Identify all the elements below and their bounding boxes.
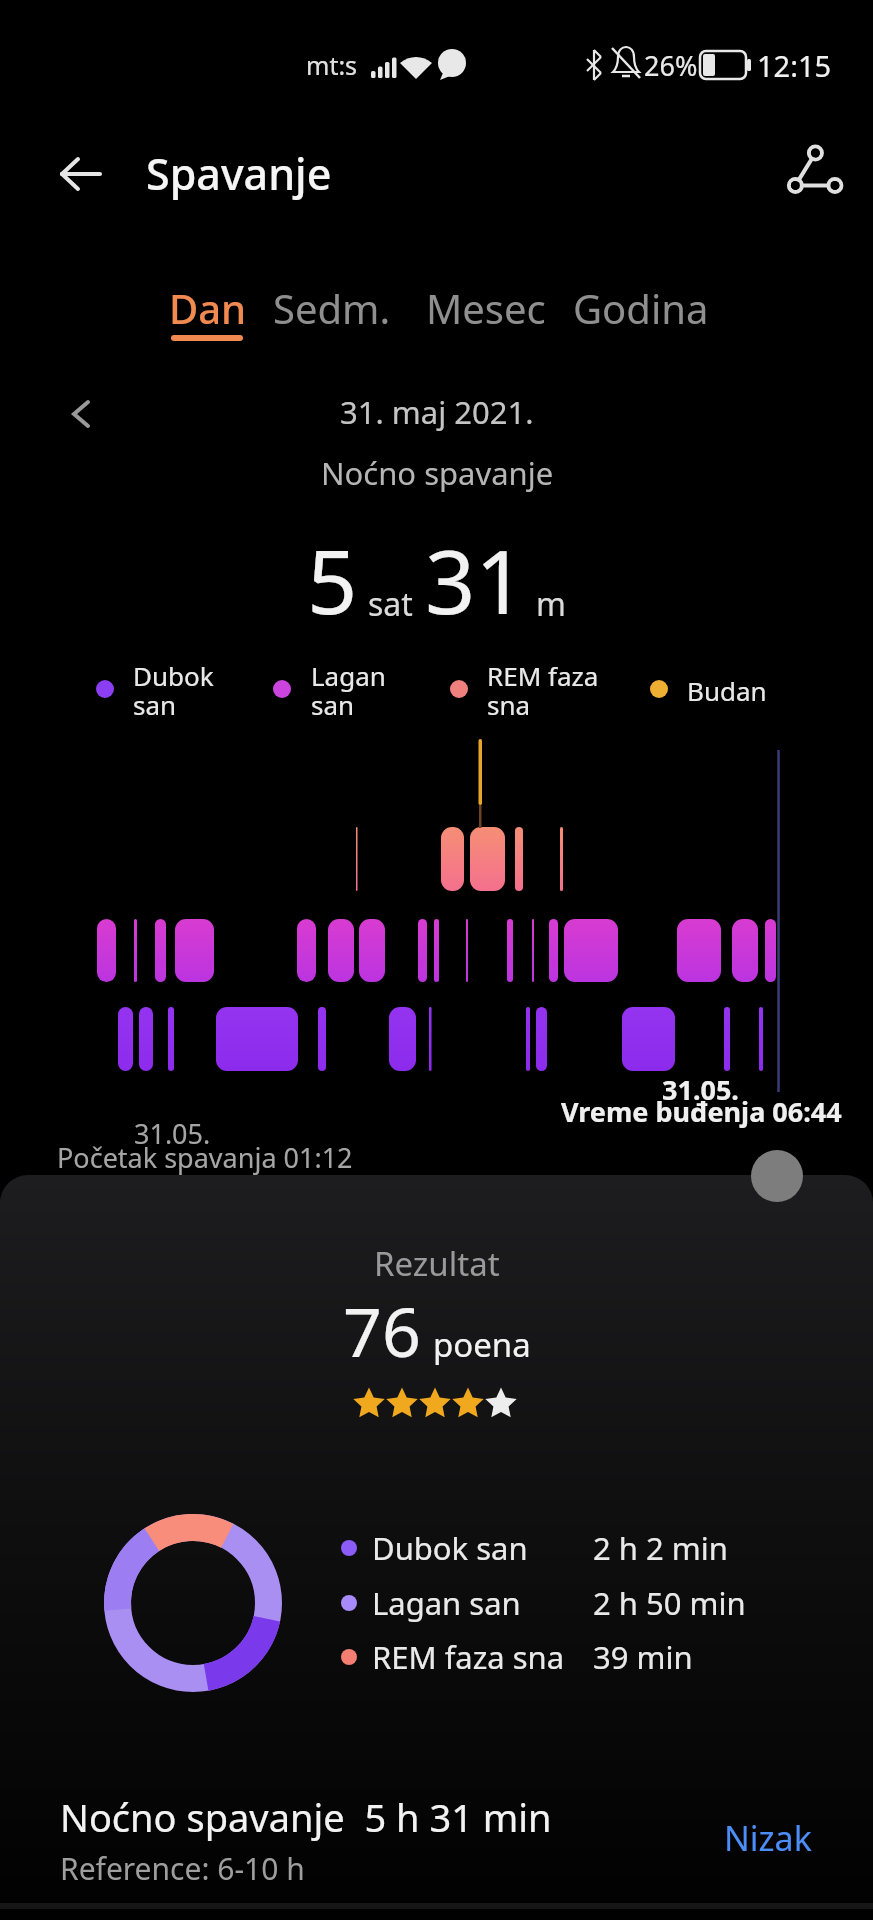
button[interactable]: Godina <box>566 275 716 341</box>
staticText: REM faza sna <box>372 1636 565 1678</box>
staticText: 5 <box>307 520 358 640</box>
button[interactable] <box>48 148 112 200</box>
staticText: 31. maj 2021. <box>340 391 534 433</box>
staticText: Dubok san <box>133 658 214 722</box>
staticText: Rezultat <box>374 1241 500 1286</box>
staticText: Noćno spavanje <box>321 452 554 494</box>
staticText: poena <box>433 1322 531 1367</box>
staticText: 39 min <box>593 1636 693 1678</box>
staticText: m <box>536 582 566 626</box>
staticText: 2 h 2 min <box>593 1527 728 1569</box>
button[interactable] <box>751 1150 803 1202</box>
button[interactable]: Dan <box>133 275 283 341</box>
staticText: Početak spavanja 01:12 <box>57 1139 353 1176</box>
staticText: Reference: 6-10 h <box>60 1848 305 1889</box>
staticText: Mesec <box>426 281 546 335</box>
button[interactable]: Mesec <box>411 275 561 341</box>
staticText: 31 <box>425 520 526 640</box>
staticText: 76 <box>343 1284 421 1377</box>
button[interactable]: Sedm. <box>257 275 407 341</box>
staticText: Godina <box>573 281 709 335</box>
staticText: Dan <box>169 281 247 335</box>
button[interactable] <box>60 392 104 436</box>
staticText: sat <box>368 582 413 626</box>
staticText: Dubok san <box>372 1527 528 1569</box>
staticText: Lagan san <box>372 1582 521 1624</box>
button[interactable] <box>775 138 855 208</box>
staticText: 31.05. <box>662 1071 739 1108</box>
staticText: mt:s <box>306 48 358 82</box>
staticText: Nizak <box>724 1815 812 1861</box>
staticText: Lagan san <box>311 658 386 722</box>
staticText: 12:15 <box>757 46 832 85</box>
staticText: 26% <box>644 47 698 84</box>
staticText: 31.05. <box>134 1115 211 1152</box>
staticText: Budan <box>687 673 767 708</box>
staticText: 2 h 50 min <box>593 1582 746 1624</box>
staticText: Spavanje <box>146 144 332 203</box>
button[interactable]: Nizak <box>700 1812 812 1864</box>
staticText: Noćno spavanje 5 h 31 min <box>60 1791 552 1843</box>
staticText: REM faza sna <box>487 658 599 722</box>
staticText: Sedm. <box>273 281 391 335</box>
staticText: Vreme buđenja 06:44 <box>561 1093 842 1130</box>
